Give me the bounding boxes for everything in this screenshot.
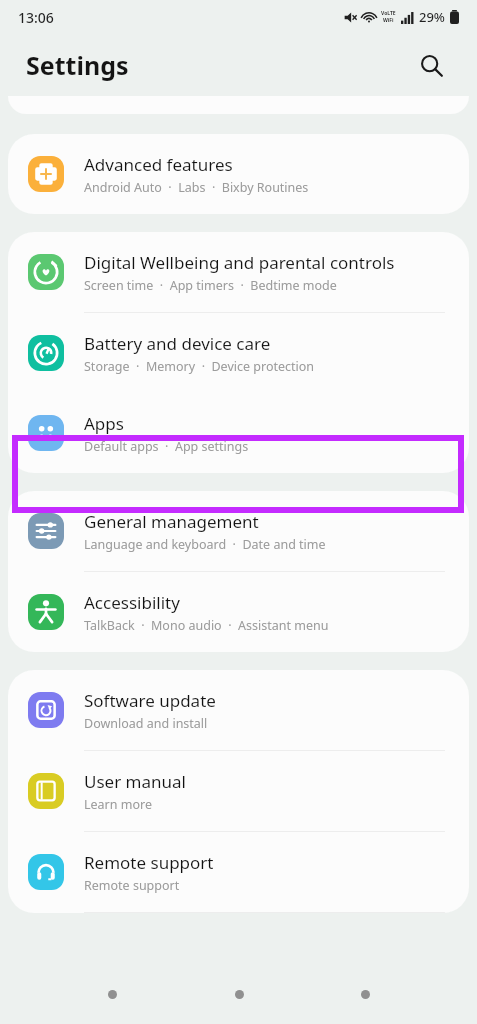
staticText: Storage · Memory · Device protection <box>84 358 315 375</box>
staticText: Apps <box>84 412 124 435</box>
staticText: Battery and device care <box>84 332 271 355</box>
button[interactable]: Apps <box>8 393 469 473</box>
button[interactable]: Software update <box>8 670 469 750</box>
staticText: Remote support <box>84 877 180 894</box>
button[interactable]: Accessibility <box>8 572 469 652</box>
staticText: User manual <box>84 770 186 793</box>
staticText: Learn more <box>84 796 152 813</box>
staticText: Screen time · App timers · Bedtime mode <box>84 277 337 294</box>
button[interactable]: Home <box>224 979 254 1009</box>
button[interactable]: Digital Wellbeing and parental controls <box>8 232 469 312</box>
staticText: General management <box>84 510 259 533</box>
staticText: Advanced features <box>84 153 233 176</box>
staticText: Digital Wellbeing and parental controls <box>84 251 395 274</box>
staticText: WiFi <box>383 17 394 24</box>
button[interactable]: Advanced features <box>8 134 469 214</box>
button[interactable]: Battery and device care <box>8 313 469 393</box>
button[interactable]: User manual <box>8 751 469 831</box>
staticText: Accessibility <box>84 591 180 614</box>
staticText: Default apps · App settings <box>84 438 249 455</box>
button[interactable]: Recents <box>97 979 127 1009</box>
button[interactable]: Search <box>411 45 451 85</box>
staticText: Download and install <box>84 715 208 732</box>
staticText: Settings <box>26 48 129 82</box>
staticText: Android Auto · Labs · Bixby Routines <box>84 179 309 196</box>
staticText: 29% <box>419 8 445 26</box>
button[interactable]: Back <box>350 979 380 1009</box>
button[interactable]: General management <box>8 491 469 571</box>
staticText: TalkBack · Mono audio · Assistant menu <box>84 617 329 634</box>
staticText: Language and keyboard · Date and time <box>84 536 326 553</box>
staticText: Software update <box>84 689 216 712</box>
button[interactable]: Remote support <box>8 832 469 912</box>
staticText: Remote support <box>84 851 214 874</box>
staticText: 13:06 <box>18 8 54 27</box>
staticText: VoLTE <box>381 10 396 17</box>
